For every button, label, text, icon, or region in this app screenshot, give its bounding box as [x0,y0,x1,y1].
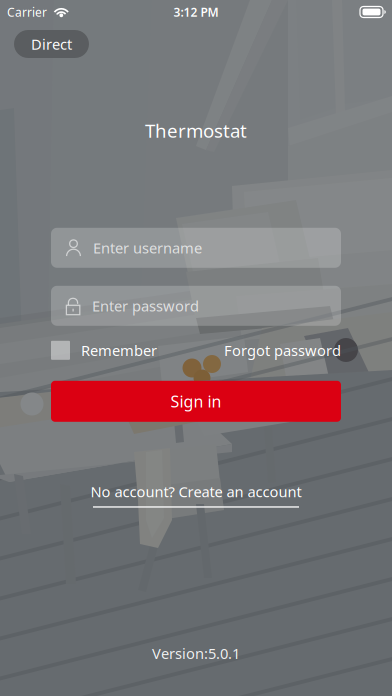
staticText: Thermostat [145,118,247,143]
button[interactable]: Forgot password [224,341,341,360]
button[interactable]: Remember [51,341,157,360]
button[interactable]: Sign in [51,381,341,422]
staticText: Version:5.0.1 [152,643,240,663]
button[interactable]: Direct [14,30,89,58]
staticText: Sign in [170,391,221,412]
staticText: Enter username [93,238,202,258]
staticText: Direct [31,34,72,54]
staticText: Remember [81,341,157,360]
staticText: Carrier [7,4,47,20]
staticText: No account? Create an account [90,482,301,501]
staticText: Enter password [92,296,199,316]
staticText: 3:12 PM [173,4,218,20]
button[interactable]: No account? Create an account [90,482,301,508]
staticText: Forgot password [224,341,341,360]
